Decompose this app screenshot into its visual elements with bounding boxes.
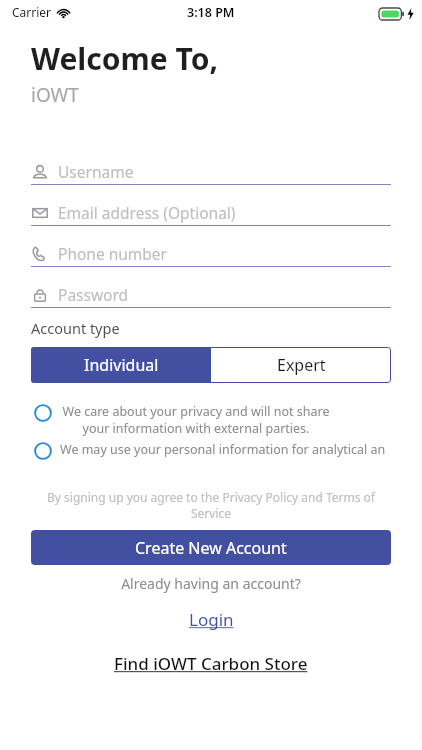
button[interactable]: Username <box>31 158 391 185</box>
staticText: Already having an account? <box>0 574 422 593</box>
button[interactable]: Email address (Optional) <box>31 199 391 226</box>
staticText: 3:18 PM <box>187 4 235 21</box>
staticText: Login <box>189 608 234 631</box>
staticText: Find iOWT Carbon Store <box>114 652 308 675</box>
other: Consent option <box>34 442 52 460</box>
button[interactable]: Consent option <box>34 441 422 459</box>
staticText: By signing up you agree to the Privacy P… <box>44 489 378 521</box>
other: Consent option <box>34 404 52 422</box>
staticText: Carrier <box>12 4 52 20</box>
staticText: Expert <box>277 354 326 376</box>
staticText: We care about your privacy and will not … <box>60 403 332 420</box>
staticText: Email address (Optional) <box>58 202 236 223</box>
button[interactable]: Phone number <box>31 240 391 267</box>
staticText: Password <box>58 284 129 305</box>
button[interactable]: Individual <box>31 347 211 383</box>
button[interactable]: Find iOWT Carbon Store <box>108 650 314 677</box>
staticText: iOWT <box>31 82 79 108</box>
staticText: your information with external parties. <box>60 420 332 437</box>
staticText: Account type <box>31 318 120 338</box>
button[interactable]: Consent option <box>34 403 422 437</box>
staticText: Phone number <box>58 243 168 264</box>
staticText: Welcome To, <box>31 38 218 79</box>
button[interactable]: Expert <box>211 347 391 383</box>
staticText: We may use your personal information for… <box>60 441 386 458</box>
staticText: Create New Account <box>135 537 287 559</box>
staticText: Username <box>58 161 134 182</box>
button[interactable]: Create New Account <box>31 530 391 565</box>
button[interactable]: Login <box>183 606 240 633</box>
button[interactable]: Password <box>31 281 391 308</box>
staticText: Individual <box>84 354 159 376</box>
